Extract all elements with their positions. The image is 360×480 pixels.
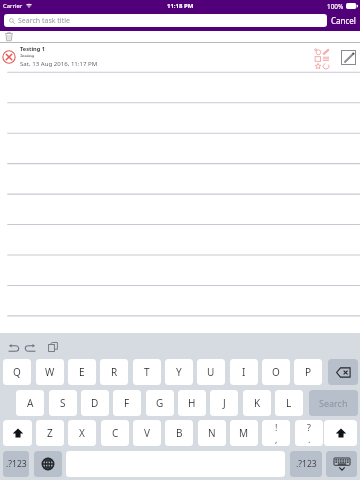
button[interactable]: .?123 [3, 451, 29, 477]
button[interactable]: ? [295, 420, 323, 446]
button[interactable]: D [81, 390, 109, 416]
button[interactable]: X [68, 420, 96, 446]
staticText: A [27, 396, 34, 410]
staticText: D [91, 396, 99, 410]
button[interactable]: P [294, 359, 322, 385]
button[interactable]: U [197, 359, 225, 385]
staticText: F [124, 396, 130, 410]
button[interactable]: Backspace [328, 359, 358, 385]
staticText: Z [47, 426, 53, 440]
button[interactable]: A [16, 390, 44, 416]
staticText: T [144, 365, 150, 379]
staticText: E [79, 365, 85, 379]
button[interactable]: T [133, 359, 161, 385]
button[interactable]: S [49, 390, 77, 416]
staticText: .?123 [296, 458, 317, 470]
staticText: X [79, 426, 85, 440]
staticText: Sat, 13 Aug 2016, 11:17 PM [20, 59, 98, 67]
staticText: W [45, 365, 55, 379]
staticText: Search task title [18, 16, 70, 26]
button[interactable]: B [165, 420, 193, 446]
staticText: , [275, 433, 278, 445]
button[interactable]: M [230, 420, 258, 446]
staticText: Q [13, 365, 21, 379]
button[interactable]: ! [262, 420, 290, 446]
button[interactable]: Undo [5, 339, 21, 355]
button[interactable]: Delete [1, 31, 17, 42]
staticText: Y [176, 365, 182, 379]
button[interactable]: Redo [22, 339, 38, 355]
button[interactable]: Search [309, 390, 358, 416]
staticText: R [111, 365, 118, 379]
button[interactable]: H [178, 390, 206, 416]
button[interactable]: J [210, 390, 238, 416]
staticText: O [272, 365, 280, 379]
staticText: Testing [20, 53, 35, 59]
staticText: .?123 [6, 458, 27, 470]
staticText: . [308, 433, 311, 445]
button[interactable]: R [100, 359, 128, 385]
staticText: N [208, 426, 216, 440]
staticText: 11:18 PM [167, 2, 194, 10]
staticText: ! [275, 421, 278, 433]
staticText: K [254, 396, 261, 410]
button[interactable]: Paste [45, 339, 61, 355]
staticText: U [207, 365, 215, 379]
staticText: ? [307, 421, 311, 433]
staticText: J [223, 396, 226, 410]
button[interactable]: Shift [3, 420, 32, 446]
staticText: L [286, 396, 292, 410]
button[interactable]: G [146, 390, 174, 416]
staticText: Carrier [3, 2, 23, 10]
button[interactable]: Z [36, 420, 64, 446]
button[interactable]: Next keyboard [34, 451, 62, 477]
button[interactable]: Edit [341, 50, 356, 65]
button[interactable]: E [68, 359, 96, 385]
staticText: G [156, 396, 164, 410]
button[interactable]: Search task title [4, 14, 327, 27]
staticText: Search [319, 397, 348, 409]
button[interactable]: Testing 1 [0, 43, 360, 72]
staticText: Testing 1 [20, 45, 45, 53]
button[interactable]: I [230, 359, 258, 385]
button[interactable]: Y [165, 359, 193, 385]
staticText: H [188, 396, 196, 410]
button[interactable]: Hide keyboard [326, 451, 357, 477]
staticText: M [239, 426, 249, 440]
button[interactable]: Q [3, 359, 31, 385]
button[interactable]: O [262, 359, 290, 385]
button[interactable]: K [243, 390, 271, 416]
staticText: B [176, 426, 183, 440]
staticText: P [305, 365, 312, 379]
staticText: S [60, 396, 66, 410]
staticText: C [112, 426, 119, 440]
button[interactable]: L [275, 390, 303, 416]
staticText: V [144, 426, 150, 440]
button[interactable]: Cancel [327, 11, 360, 29]
button[interactable]: N [198, 420, 226, 446]
button[interactable]: Shift [324, 420, 357, 446]
button[interactable]: V [133, 420, 161, 446]
button[interactable]: W [36, 359, 64, 385]
button[interactable]: .?123 [290, 451, 322, 477]
button[interactable]: F [113, 390, 141, 416]
staticText: I [242, 365, 246, 379]
staticText: Cancel [331, 15, 356, 26]
staticText: 100% [327, 2, 344, 11]
button[interactable]: C [101, 420, 129, 446]
